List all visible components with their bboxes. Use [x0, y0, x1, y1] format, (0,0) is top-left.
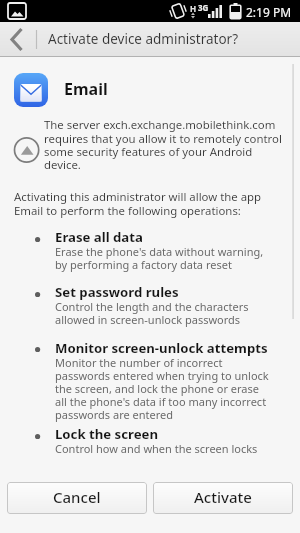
staticText: Monitor the number of incorrect password…: [55, 355, 269, 422]
staticText: Lock the screen: [55, 425, 158, 443]
staticText: H: [190, 3, 197, 14]
staticText: Erase all data: [55, 228, 143, 246]
staticText: Control how and when the screen locks: [55, 441, 258, 456]
staticText: Email: [64, 78, 108, 100]
button[interactable]: Cancel: [7, 482, 147, 514]
staticText: Control the length and the characters al…: [55, 299, 249, 327]
staticText: 2:19 PM: [246, 4, 292, 20]
staticText: Activate: [194, 487, 252, 507]
staticText: Activating this administrator will allow…: [14, 189, 262, 218]
button[interactable]: Activate: [153, 482, 293, 514]
staticText: Set password rules: [55, 283, 179, 301]
staticText: Cancel: [53, 487, 101, 507]
staticText: Erase the phone's data without warning, …: [55, 244, 264, 272]
staticText: Monitor screen-unlock attempts: [55, 339, 268, 357]
staticText: The server exch.exchange.mobilethink.com…: [44, 117, 282, 172]
button[interactable]: [14, 137, 40, 163]
staticText: Activate device administrator?: [48, 30, 238, 48]
staticText: 3G: [198, 2, 209, 13]
button[interactable]: [0, 22, 36, 57]
